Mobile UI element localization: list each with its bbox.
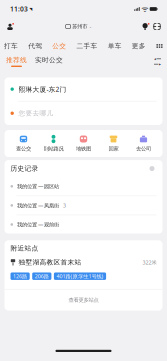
staticText: 历史记录 — [10, 164, 38, 173]
button[interactable]: 您要去哪儿 — [4, 101, 162, 125]
button[interactable]: 查公交 — [8, 135, 38, 152]
staticText: 熙琳大厦-东2门 — [18, 85, 66, 94]
button[interactable]: 公交 — [52, 39, 66, 52]
button[interactable]: 206路 — [32, 272, 51, 280]
staticText: 单车 — [108, 42, 122, 50]
button[interactable]: 推荐线 — [6, 54, 27, 69]
staticText: 独墅湖高教区首末站 — [18, 258, 81, 266]
staticText: 查公交 — [16, 145, 31, 152]
staticText: ▸ — [159, 62, 161, 66]
button[interactable]: 我的位置 — 园区站 — [4, 177, 162, 196]
staticText: 实时公交 — [35, 56, 63, 64]
button[interactable]: Swap direction — [153, 55, 162, 68]
button[interactable]: 打车 — [4, 39, 18, 52]
staticText: 206路 — [35, 273, 49, 280]
button[interactable]: Profile — [0, 18, 17, 34]
staticText: 附近站点 — [10, 244, 38, 252]
button[interactable]: 回家 — [98, 135, 128, 152]
staticText: 公交 — [52, 42, 66, 50]
staticText: 代驾 — [28, 42, 42, 50]
staticText: ᯤ — [141, 4, 148, 14]
staticText: 苏州市 — [72, 23, 87, 30]
button[interactable]: 到站路况 — [38, 135, 68, 152]
button[interactable]: 独墅湖高教区首末站 — [4, 256, 162, 289]
staticText: 去公司 — [136, 145, 151, 152]
button[interactable]: 实时公交 — [35, 54, 63, 69]
button[interactable]: Nearby — [139, 18, 152, 34]
staticText: 您要去哪儿 — [18, 109, 53, 117]
staticText: 到站路况 — [43, 145, 63, 152]
button[interactable]: 苏州市 — [65, 18, 92, 34]
button[interactable]: Scan — [152, 18, 167, 34]
staticText: 我的位置 — 园区站 — [17, 183, 59, 190]
button[interactable]: 更多 — [132, 39, 146, 52]
button[interactable]: 我的位置 — 观前街 — [4, 215, 162, 234]
staticText: 126路 — [13, 273, 27, 280]
button[interactable]: 熙琳大厦-东2门 — [4, 77, 162, 101]
button[interactable]: 我的位置 — 凤凰街 — [4, 196, 162, 215]
staticText: 11:03 — [10, 5, 28, 13]
button[interactable]: 地铁图 — [68, 135, 98, 152]
button[interactable]: 代驾 — [28, 39, 42, 52]
staticText: 322米 — [142, 259, 156, 266]
button[interactable]: 126路 — [10, 272, 30, 280]
staticText: 打车 — [4, 42, 18, 50]
staticText: 查看更多站点 — [68, 297, 98, 303]
staticText: 更多 — [132, 42, 146, 50]
staticText: 3 — [63, 202, 66, 209]
staticText: 我的位置 — 凤凰街 — [17, 202, 59, 209]
button[interactable]: 去公司 — [128, 135, 158, 152]
staticText: 地铁图 — [76, 145, 91, 152]
staticText: 401路(原:学生1号线) — [56, 273, 103, 280]
staticText: ◂ — [154, 57, 156, 61]
staticText: 回家 — [108, 145, 118, 152]
button[interactable]: All categories — [156, 39, 163, 52]
button[interactable]: 查看更多站点 — [4, 289, 162, 310]
staticText: 推荐线 — [6, 56, 27, 64]
button[interactable]: 单车 — [108, 39, 122, 52]
staticText: ⌄ — [89, 24, 92, 29]
staticText: 二手车 — [76, 42, 97, 50]
button[interactable]: Clear history — [147, 164, 156, 173]
staticText: 我的位置 — 观前街 — [17, 221, 59, 228]
button[interactable]: 二手车 — [76, 39, 97, 52]
button[interactable]: 401路(原:学生1号线) — [54, 272, 106, 280]
staticText: ◥ — [29, 7, 32, 11]
